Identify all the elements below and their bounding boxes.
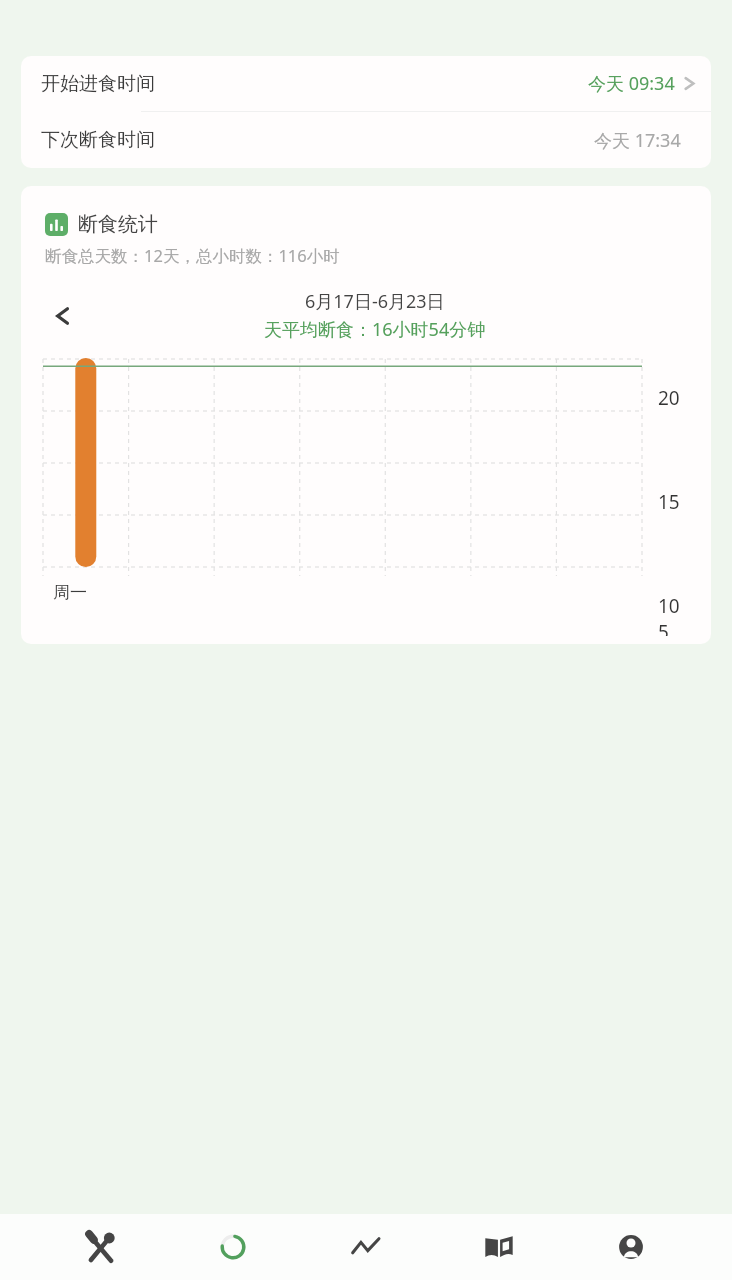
button[interactable]: 开始进食时间 [21,56,711,111]
staticText: 断食总天数：12天，总小时数：116小时 [45,244,340,267]
staticText: 断食统计 [78,212,158,237]
button[interactable]: Fasting timer [201,1215,265,1279]
button[interactable]: Profile [599,1215,663,1279]
staticText: 5 [658,619,669,636]
staticText: 开始进食时间 [41,72,155,96]
staticText: 6月17日-6月23日 [305,289,445,314]
staticText: 15 [658,489,680,515]
staticText: 今天 17:34 [594,128,681,153]
button[interactable]: Articles [467,1215,531,1279]
button[interactable]: Previous week [43,296,83,336]
staticText: 20 [658,385,680,411]
button[interactable]: Trends [334,1215,398,1279]
staticText: 今天 09:34 [588,71,675,96]
staticText: 10 [658,593,680,619]
button[interactable]: Meals [69,1215,133,1279]
button[interactable]: 下次断食时间 [21,112,711,168]
staticText: 天平均断食：16小时54分钟 [264,317,486,342]
staticText: 周一 [53,582,87,603]
staticText: 下次断食时间 [41,128,155,152]
